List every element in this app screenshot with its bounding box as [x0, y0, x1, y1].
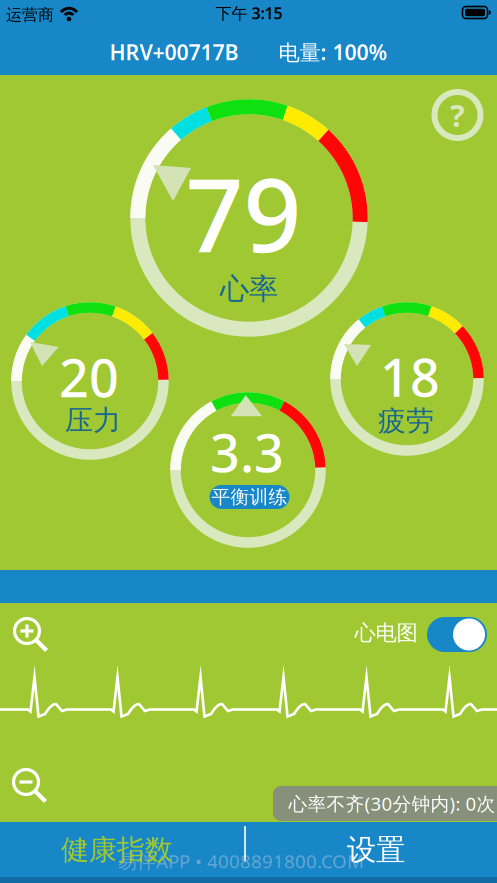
- staticText: 压力: [65, 403, 121, 438]
- staticText: 疲劳: [378, 404, 434, 438]
- staticText: ?: [450, 95, 465, 135]
- staticText: 18: [380, 342, 440, 411]
- staticText: 电量: 100%: [278, 38, 387, 66]
- staticText: 20: [59, 342, 119, 412]
- staticText: HRV+00717B: [109, 38, 238, 66]
- button[interactable]: Zoom in: [12, 616, 49, 653]
- staticText: 心率: [220, 271, 278, 307]
- staticText: 易伴APP • 4008891800.COM: [118, 849, 364, 873]
- button[interactable]: 平衡训练: [209, 485, 289, 509]
- staticText: 下午 3:15: [215, 2, 282, 24]
- button[interactable]: Help: [431, 89, 483, 141]
- staticText: 心电图: [354, 620, 417, 646]
- staticText: 运营商: [6, 5, 54, 25]
- staticText: 79: [185, 146, 301, 280]
- button[interactable]: ECG on: [427, 617, 487, 652]
- staticText: 3.3: [210, 417, 284, 487]
- staticText: 设置: [347, 832, 405, 868]
- button[interactable]: 设置: [256, 822, 496, 877]
- button[interactable]: 健康指数: [0, 822, 237, 877]
- staticText: 心率不齐(30分钟内): 0次: [288, 791, 495, 816]
- button[interactable]: Zoom out: [11, 767, 48, 804]
- staticText: 健康指数: [61, 833, 173, 867]
- staticText: 平衡训练: [211, 485, 287, 508]
